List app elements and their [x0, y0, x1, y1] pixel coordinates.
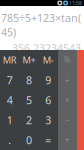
button[interactable]: M- — [39, 50, 58, 70]
staticText: 8 — [26, 73, 32, 87]
button[interactable]: × — [58, 90, 77, 110]
button[interactable]: 9 — [39, 70, 58, 90]
staticText: 1 — [7, 113, 13, 127]
button[interactable]: % — [58, 50, 77, 70]
button[interactable]: 7 — [0, 70, 19, 90]
staticText: 2 — [26, 113, 32, 127]
button[interactable]: 8 — [19, 70, 39, 90]
button[interactable]: 4 — [0, 90, 19, 110]
staticText: 6 — [45, 93, 51, 107]
button[interactable]: . — [0, 130, 19, 150]
staticText: − — [65, 115, 70, 125]
staticText: 5 — [26, 93, 32, 107]
staticText: 785÷5+123×tan(45) — [1, 11, 81, 39]
staticText: MR — [3, 54, 17, 66]
staticText: + — [65, 135, 70, 145]
staticText: 9 — [45, 73, 51, 87]
button[interactable]: + — [58, 130, 77, 150]
staticText: × — [65, 95, 70, 105]
button[interactable]: ÷ — [58, 70, 77, 90]
staticText: M- — [43, 54, 54, 66]
button[interactable]: 2 — [19, 110, 39, 130]
staticText: 11:58 — [69, 0, 82, 7]
button[interactable]: 0 — [19, 130, 39, 150]
staticText: 0 — [26, 133, 32, 147]
staticText: = — [45, 133, 51, 147]
button[interactable]: = — [39, 130, 58, 150]
staticText: % — [64, 55, 71, 65]
staticText: . — [8, 133, 11, 147]
staticText: 3 — [45, 113, 51, 127]
staticText: M+ — [22, 54, 35, 66]
button[interactable]: 1 — [0, 110, 19, 130]
staticText: 4 — [7, 93, 13, 107]
staticText: 7 — [7, 73, 13, 87]
button[interactable]: 3 — [39, 110, 58, 130]
button[interactable]: MR — [0, 50, 19, 70]
staticText: 356.23234543 — [12, 41, 81, 55]
button[interactable]: 5 — [19, 90, 39, 110]
button[interactable]: M+ — [19, 50, 39, 70]
staticText: ÷ — [65, 75, 70, 85]
button[interactable]: 6 — [39, 90, 58, 110]
